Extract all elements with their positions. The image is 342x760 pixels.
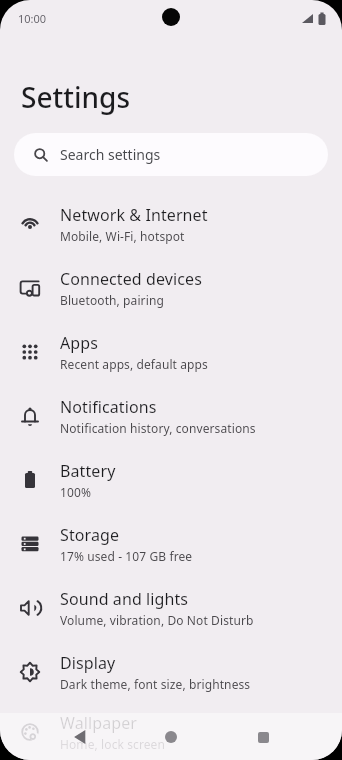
button[interactable]: Notifications bbox=[0, 384, 342, 448]
staticText: Display bbox=[60, 652, 116, 674]
staticText: Connected devices bbox=[60, 268, 202, 290]
button[interactable]: Battery bbox=[0, 448, 342, 512]
staticText: 10:00 bbox=[18, 11, 47, 26]
staticText: Storage bbox=[60, 524, 120, 546]
staticText: Volume, vibration, Do Not Disturb bbox=[60, 612, 254, 628]
staticText: Dark theme, font size, brightness bbox=[60, 676, 251, 692]
button[interactable] bbox=[62, 720, 96, 754]
staticText: 100% bbox=[60, 484, 91, 500]
staticText: Battery bbox=[60, 460, 116, 482]
button[interactable]: Display bbox=[0, 640, 342, 704]
staticText: Notifications bbox=[60, 396, 157, 418]
staticText: Bluetooth, pairing bbox=[60, 292, 164, 308]
staticText: Search settings bbox=[60, 145, 161, 164]
button[interactable]: Connected devices bbox=[0, 256, 342, 320]
staticText: 17% used - 107 GB free bbox=[60, 548, 193, 564]
button[interactable]: Storage bbox=[0, 512, 342, 576]
button[interactable]: Search settings bbox=[14, 133, 328, 176]
button[interactable] bbox=[154, 720, 188, 754]
button[interactable]: Sound and lights bbox=[0, 576, 342, 640]
button[interactable]: Apps bbox=[0, 320, 342, 384]
staticText: Mobile, Wi-Fi, hotspot bbox=[60, 228, 185, 244]
staticText: Recent apps, default apps bbox=[60, 356, 208, 372]
staticText: Wallpaper bbox=[60, 712, 137, 734]
staticText: Home, lock screen bbox=[60, 736, 165, 752]
staticText: Settings bbox=[21, 78, 131, 116]
button[interactable]: Wallpaper bbox=[0, 704, 342, 760]
staticText: Apps bbox=[60, 332, 98, 354]
button[interactable] bbox=[246, 720, 280, 754]
staticText: Sound and lights bbox=[60, 588, 189, 610]
staticText: Network & Internet bbox=[60, 204, 208, 226]
staticText: Notification history, conversations bbox=[60, 420, 256, 436]
button[interactable]: Network & Internet bbox=[0, 192, 342, 256]
